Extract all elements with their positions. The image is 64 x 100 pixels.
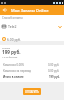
- button[interactable]: Tele2: [0, 23, 64, 30]
- staticText: Итого к оплате: [3, 75, 24, 79]
- staticText: Способ оплаты: [2, 16, 23, 20]
- staticText: 199 руб.: [2, 49, 21, 55]
- staticText: 6.00 руб.: [7, 37, 21, 41]
- staticText: Комиссия за перевод: [3, 69, 31, 73]
- button[interactable]: ОПЛАТИТЬ: [23, 88, 41, 95]
- staticText: 0.00 руб.: [48, 69, 60, 73]
- staticText: Tele2: [8, 24, 17, 29]
- staticText: ОПЛАТИТЬ: [25, 90, 39, 94]
- staticText: + 6.00 бонусов: [2, 56, 18, 59]
- staticText: Сумма: [2, 46, 11, 49]
- staticText: Комиссия 0.00%: [3, 63, 25, 67]
- staticText: 199 руб.: [49, 75, 60, 79]
- button[interactable]: Back: [0, 5, 10, 15]
- staticText: Мои Заказы Online: [11, 8, 49, 13]
- staticText: 0.00 руб.: [48, 63, 60, 67]
